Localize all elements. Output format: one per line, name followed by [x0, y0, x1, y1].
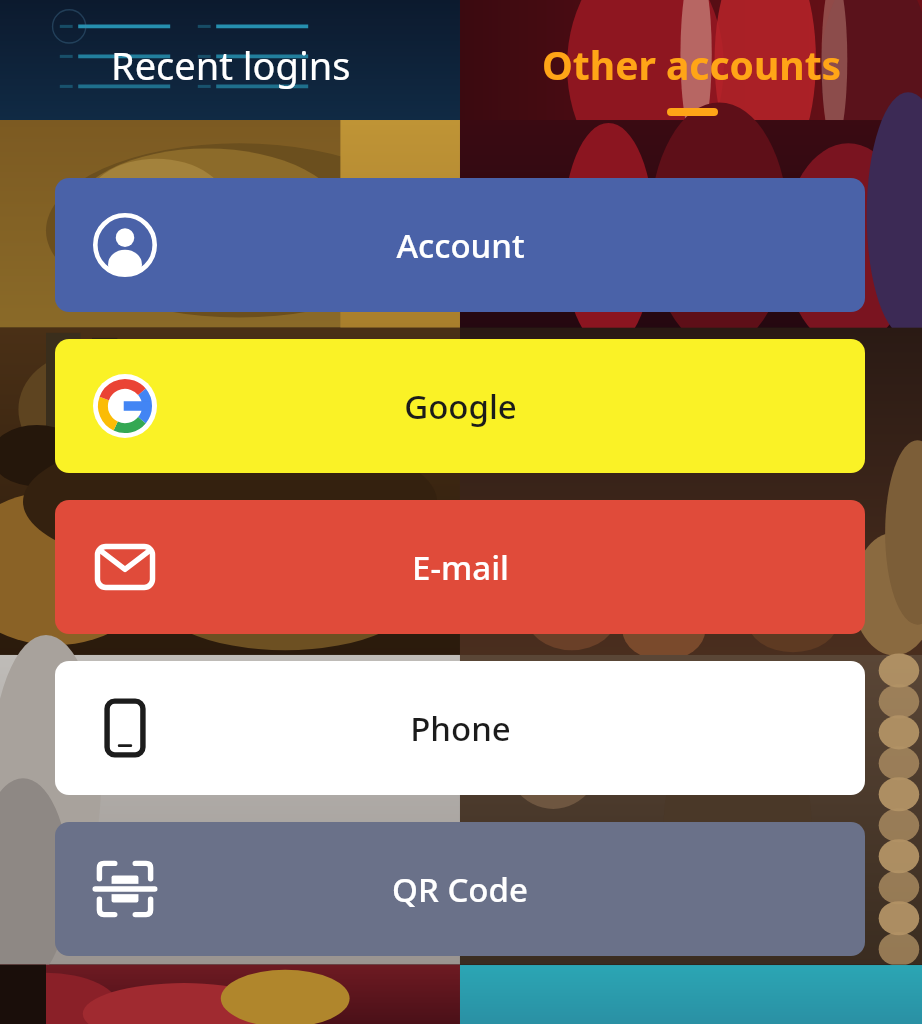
staticText: QR Code: [392, 867, 528, 912]
button[interactable]: Google: [55, 339, 865, 473]
staticText: Recent logins: [111, 39, 351, 91]
staticText: E-mail: [412, 545, 509, 590]
button[interactable]: E-mail: [55, 500, 865, 634]
staticText: Google: [404, 384, 517, 429]
button[interactable]: Other accounts: [461, 0, 922, 120]
button[interactable]: Account: [55, 178, 865, 312]
button[interactable]: QR Code: [55, 822, 865, 956]
button[interactable]: Phone: [55, 661, 865, 795]
staticText: Other accounts: [542, 38, 842, 91]
button[interactable]: Recent logins: [0, 0, 461, 120]
staticText: Phone: [410, 706, 511, 751]
staticText: Account: [396, 223, 525, 268]
